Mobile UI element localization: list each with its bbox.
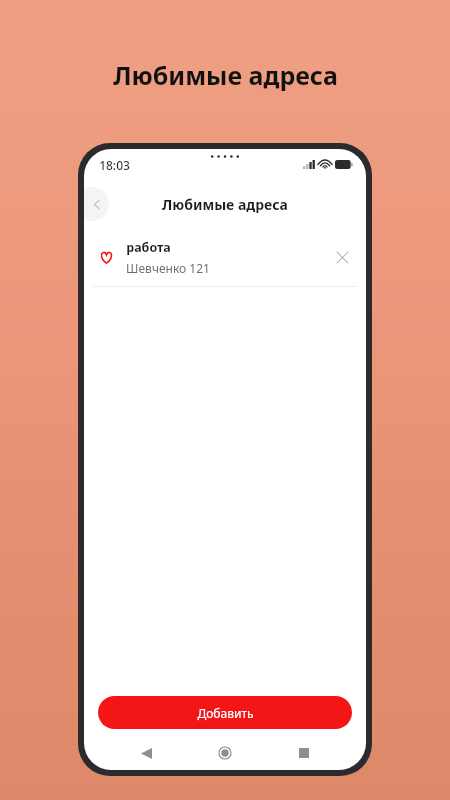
staticText: Любимые адреса: [162, 195, 288, 214]
staticText: работа: [126, 239, 171, 256]
button[interactable]: Back: [84, 187, 109, 221]
button[interactable]: Back: [129, 736, 163, 770]
staticText: Любимые адреса: [113, 58, 338, 92]
button[interactable]: Добавить: [98, 696, 352, 729]
button[interactable]: работа: [84, 228, 366, 286]
staticText: Шевченко 121: [126, 260, 210, 276]
staticText: Добавить: [197, 705, 254, 721]
button[interactable]: Recents: [287, 736, 321, 770]
button[interactable]: Remove: [329, 244, 355, 270]
button[interactable]: Home: [208, 736, 242, 770]
staticText: 18:03: [99, 157, 130, 173]
